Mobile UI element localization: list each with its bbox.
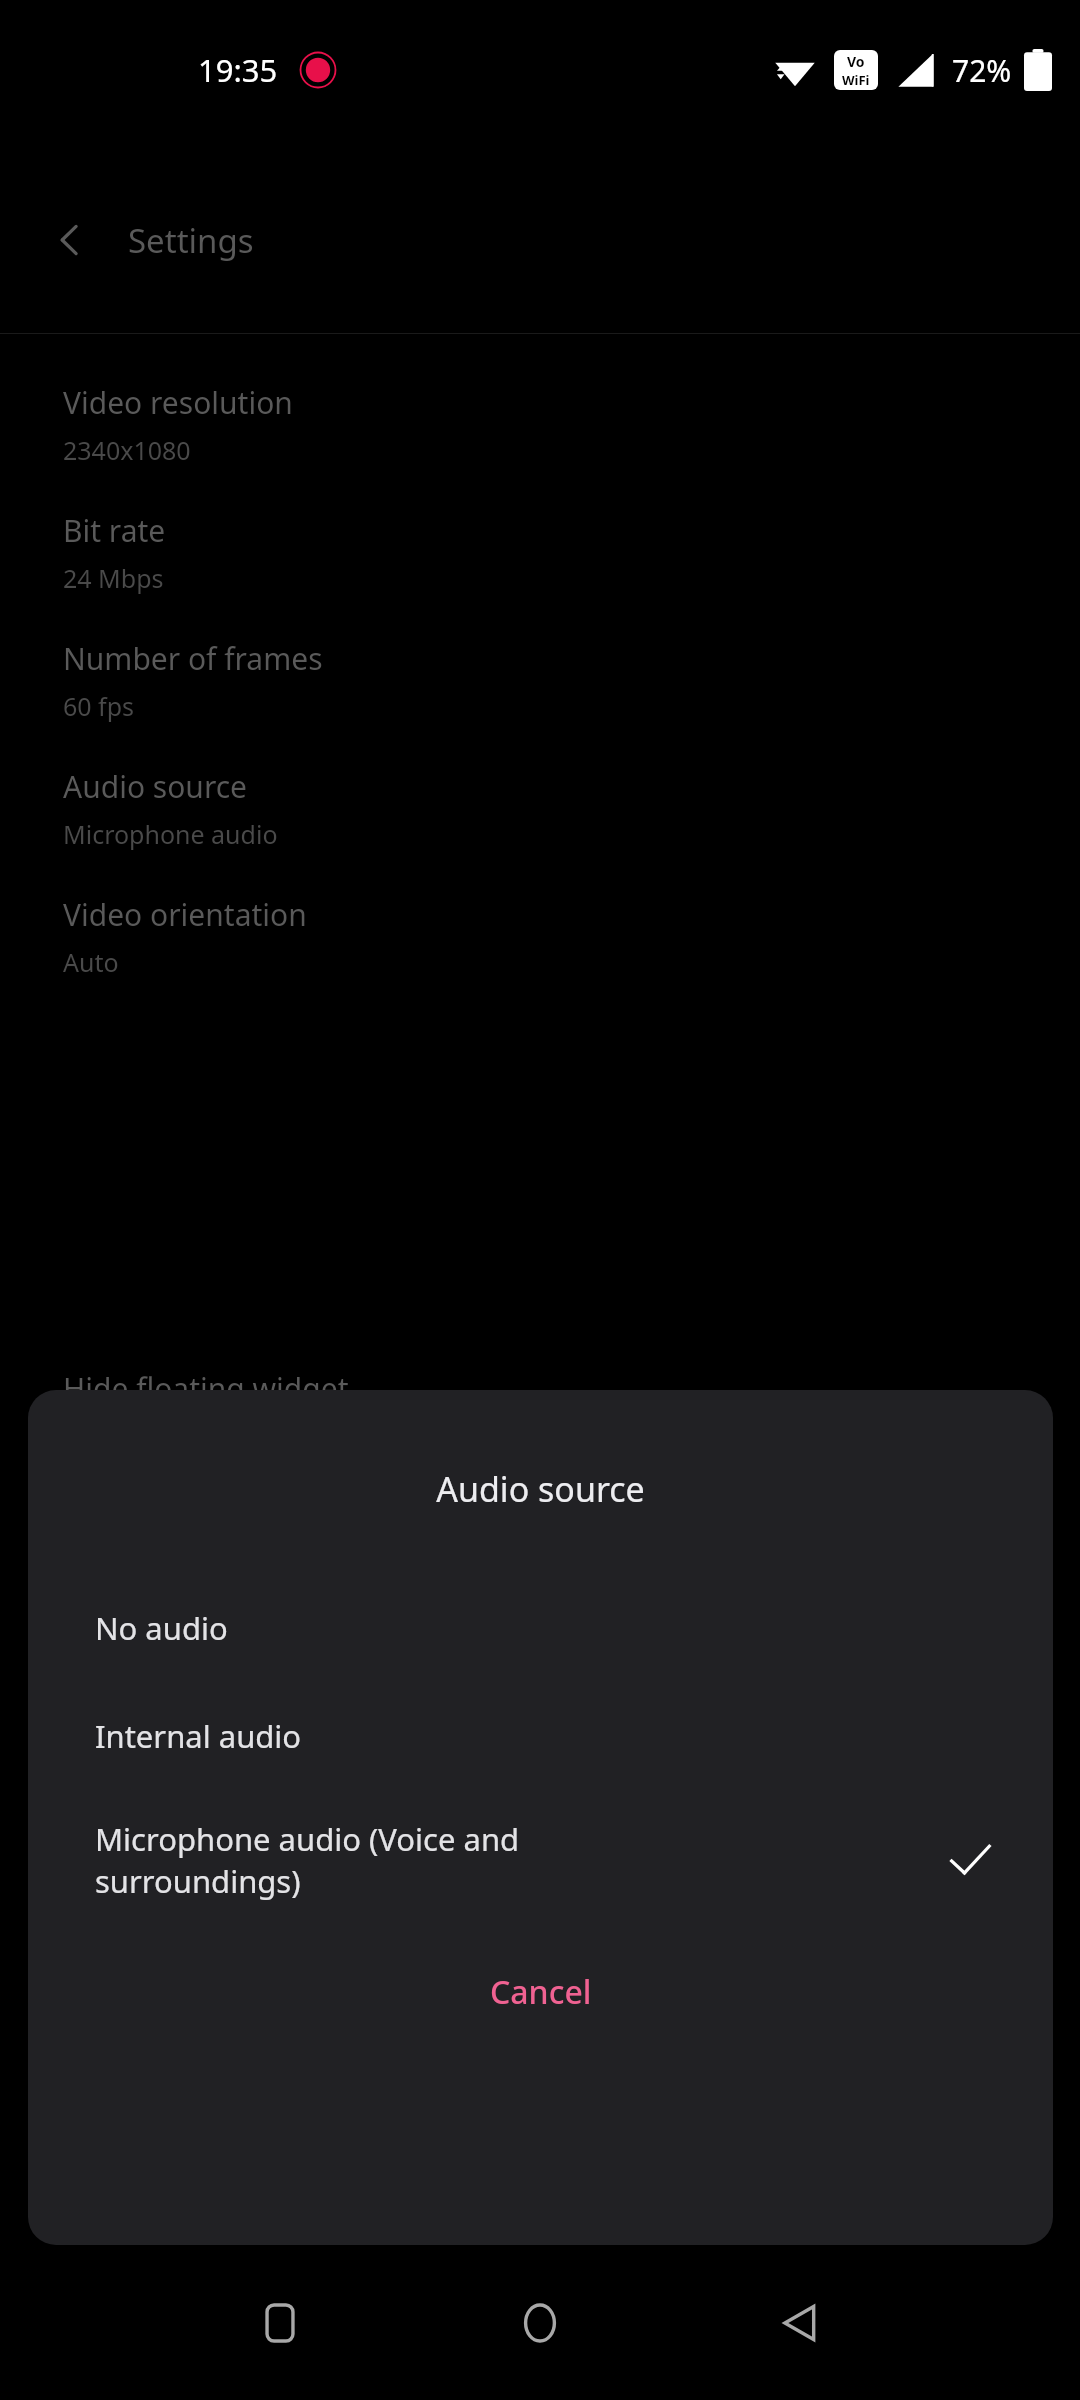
staticText: Internal audio [95, 1715, 993, 1757]
button[interactable]: Audio source [0, 762, 1080, 890]
staticText: Audio source [28, 1466, 1053, 1512]
staticText: 19:35 [198, 49, 278, 91]
staticText: Cancel [490, 1970, 592, 2014]
button[interactable]: Bit rate [0, 506, 1080, 634]
button[interactable]: Video resolution [0, 378, 1080, 506]
button[interactable]: Cancel [28, 1944, 1053, 2040]
staticText: 24 Mbps [63, 561, 164, 595]
button[interactable]: Recent apps [244, 2287, 316, 2359]
staticText: 72% [952, 50, 1012, 91]
staticText: Hide floating widget [63, 1368, 349, 1409]
staticText: No audio [95, 1607, 993, 1649]
button[interactable]: Back [40, 210, 100, 270]
button[interactable]: Number of frames [0, 634, 1080, 762]
button[interactable]: Internal audio [28, 1682, 1053, 1790]
staticText: Settings [128, 218, 254, 263]
staticText: Vo [847, 52, 865, 71]
staticText: 60 fps [63, 689, 135, 723]
staticText: 2340x1080 [63, 433, 191, 467]
staticText: Auto [63, 945, 119, 979]
button[interactable]: Microphone audio (Voice and surroundings… [28, 1790, 1053, 1930]
staticText: WiFi [842, 71, 870, 89]
staticText: Number of frames [63, 638, 323, 679]
staticText: Bit rate [63, 510, 166, 551]
button[interactable]: No audio [28, 1574, 1053, 1682]
button[interactable]: Video orientation [0, 890, 1080, 1018]
button[interactable]: Home [504, 2287, 576, 2359]
staticText: Video resolution [63, 382, 293, 423]
button[interactable]: Back [764, 2287, 836, 2359]
staticText: Audio source [63, 766, 248, 807]
staticText: Microphone audio (Voice and surroundings… [95, 1818, 947, 1902]
staticText: Microphone audio [63, 817, 278, 851]
staticText: Video orientation [63, 894, 307, 935]
